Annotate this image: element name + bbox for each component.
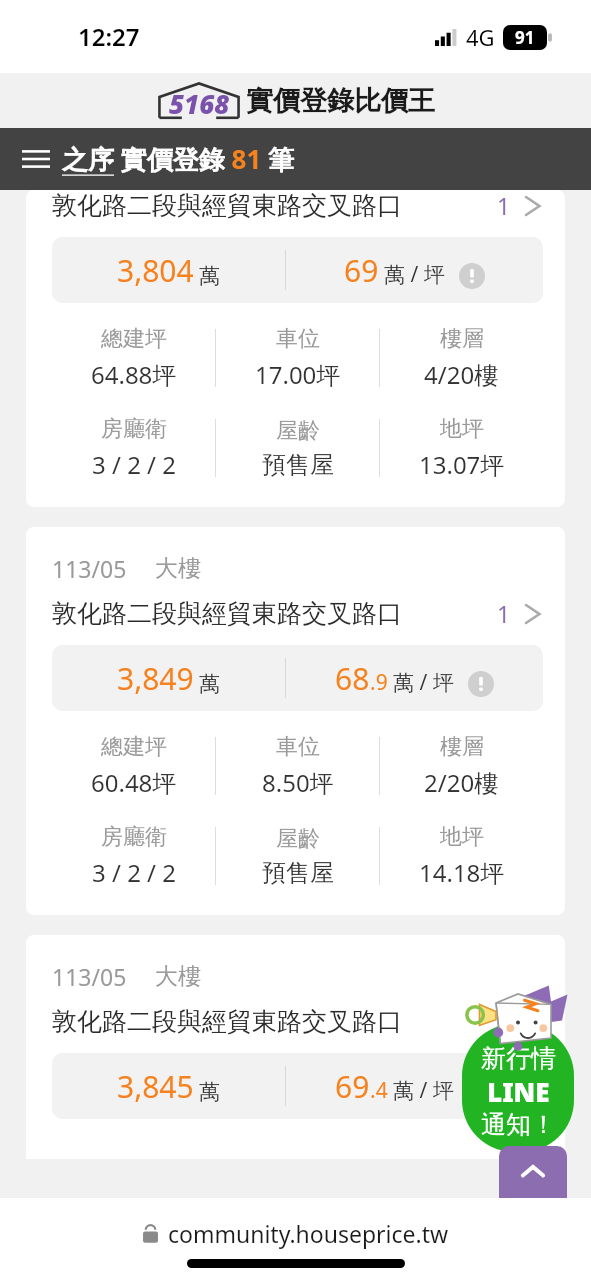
staticText: 敦化路二段與經貿東路交叉路口: [52, 190, 497, 221]
button[interactable]: 3,849: [52, 645, 543, 711]
staticText: 4G: [466, 22, 495, 52]
staticText: 車位: [276, 325, 320, 353]
staticText: 實價登錄比價王: [246, 84, 435, 118]
staticText: LINE: [487, 1074, 550, 1109]
staticText: 萬: [199, 671, 220, 697]
staticText: 萬 / 坪: [384, 260, 445, 289]
button[interactable]: 3,804: [52, 237, 543, 303]
staticText: 1: [497, 598, 511, 629]
staticText: 3 / 2 / 2: [92, 856, 176, 889]
staticText: 14.18坪: [419, 856, 505, 889]
staticText: 113/05: [52, 553, 127, 584]
button[interactable]: 新行情: [459, 982, 577, 1152]
button[interactable]: Menu: [14, 137, 58, 181]
staticText: 1: [497, 190, 511, 221]
button[interactable]: 敦化路二段與經貿東路交叉路口: [26, 190, 565, 507]
staticText: 萬 / 坪: [393, 1076, 454, 1105]
staticText: 3,849: [117, 658, 194, 699]
staticText: 2/20樓: [424, 766, 499, 799]
staticText: 60.48坪: [91, 766, 177, 799]
staticText: 13.07坪: [419, 448, 505, 481]
staticText: 車位: [276, 733, 320, 761]
staticText: 3,804: [117, 250, 194, 291]
staticText: 68: [335, 658, 370, 699]
staticText: 預售屋: [262, 858, 334, 888]
staticText: 敦化路二段與經貿東路交叉路口: [52, 1006, 402, 1037]
staticText: 屋齡: [276, 417, 320, 445]
staticText: 預售屋: [262, 450, 334, 480]
staticText: 大樓: [155, 554, 201, 583]
staticText: 地坪: [440, 823, 484, 851]
staticText: 4/20樓: [424, 358, 499, 391]
staticText: 樓層: [440, 733, 484, 761]
button[interactable]: 113/05: [26, 527, 565, 915]
staticText: 萬: [199, 263, 220, 289]
button[interactable]: 3,845: [52, 1053, 543, 1119]
staticText: 3,845: [117, 1066, 194, 1107]
staticText: 3 / 2 / 2: [92, 448, 176, 481]
staticText: 91: [515, 26, 535, 49]
staticText: 新行情: [481, 1043, 556, 1074]
staticText: 之序 實價登錄 81 筆: [62, 141, 295, 177]
staticText: 樓層: [440, 325, 484, 353]
staticText: 大樓: [155, 962, 201, 991]
button[interactable]: Info: [468, 671, 494, 697]
staticText: 113/05: [52, 961, 127, 992]
staticText: 64.88坪: [91, 358, 177, 391]
staticText: community.houseprice.tw: [168, 1218, 449, 1249]
staticText: 69: [344, 250, 379, 291]
staticText: .4: [370, 1076, 388, 1105]
staticText: 房廳衛: [101, 823, 167, 851]
staticText: 8.50坪: [262, 766, 334, 799]
staticText: 5168: [169, 86, 230, 121]
button[interactable]: Scroll to top: [499, 1146, 567, 1198]
button[interactable]: Info: [468, 1079, 494, 1105]
staticText: 屋齡: [276, 825, 320, 853]
staticText: 地坪: [440, 415, 484, 443]
staticText: 17.00坪: [255, 358, 341, 391]
staticText: 通知！: [481, 1109, 556, 1140]
button[interactable]: Info: [459, 263, 485, 289]
staticText: 萬 / 坪: [393, 668, 454, 697]
button[interactable]: 113/05: [26, 935, 565, 1159]
staticText: 總建坪: [101, 733, 167, 761]
staticText: 總建坪: [101, 325, 167, 353]
staticText: 69: [335, 1066, 370, 1107]
staticText: .9: [370, 668, 388, 697]
staticText: 房廳衛: [101, 415, 167, 443]
staticText: 12:27: [78, 20, 140, 53]
staticText: 萬: [199, 1079, 220, 1105]
staticText: 敦化路二段與經貿東路交叉路口: [52, 598, 497, 629]
